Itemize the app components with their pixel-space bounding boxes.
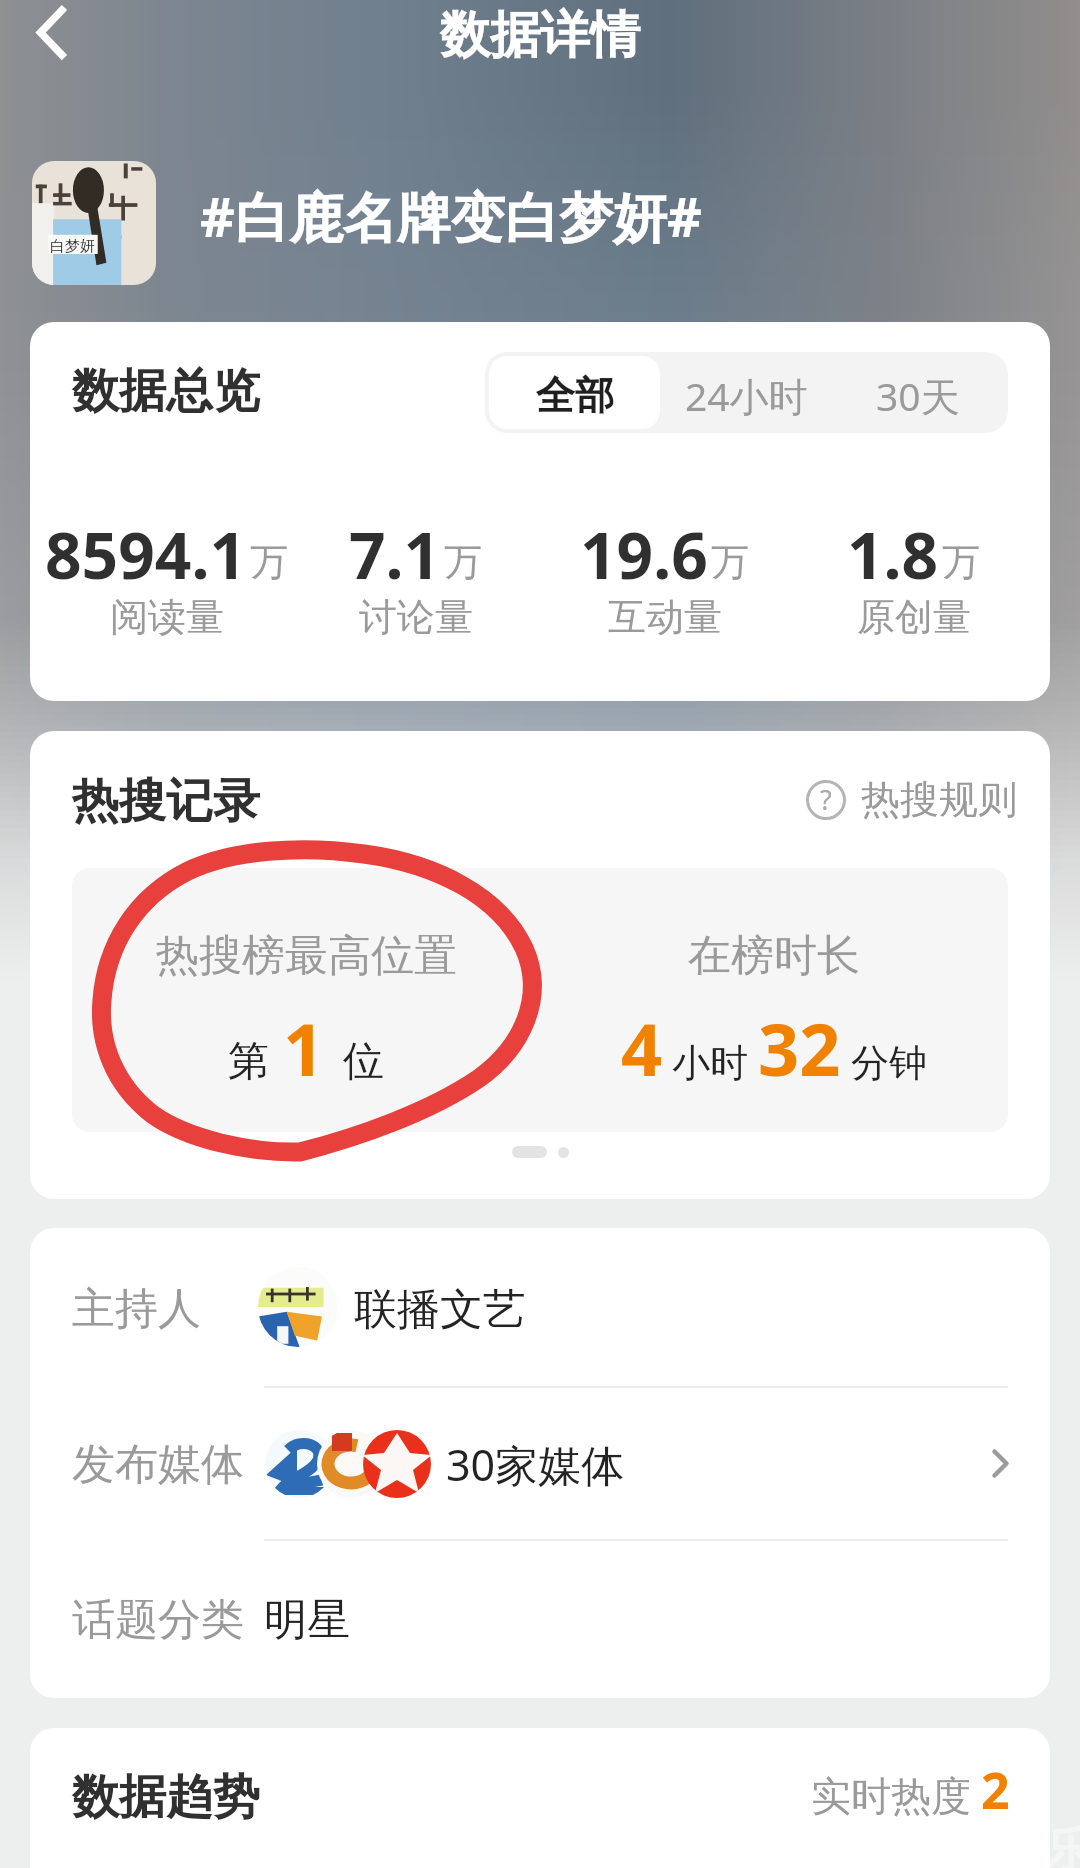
staticText: 万 [942,538,980,586]
staticText: 万 [250,538,288,586]
staticText: 阅读量 [110,593,224,641]
staticText: 分钟 [851,1039,927,1087]
staticText: #白鹿名牌变白梦妍# [200,179,702,253]
staticText: ? [820,781,832,818]
staticText: 数据趋势 [72,1768,260,1827]
staticText: 30家媒体 [446,1435,625,1494]
staticText: 主持人 [72,1282,258,1336]
staticText: 7.1 [349,511,441,598]
staticText: 1 [283,999,325,1097]
staticText: 19.6 [580,511,708,598]
staticText: 热搜记录 [72,772,260,831]
staticText: 话题分类 [72,1593,264,1647]
staticText: 数据总览 [72,362,260,421]
staticText: 全部 [536,371,614,420]
staticText: 明星 [264,1593,350,1647]
staticText: 数据详情 [440,4,640,67]
staticText: 发布媒体 [72,1438,264,1492]
button[interactable]: 发布媒体 [72,1388,1008,1539]
staticText: 第 [228,1036,269,1088]
staticText: 万 [711,538,749,586]
staticText: 万 [444,538,482,586]
staticText: 实时热度 [811,1771,971,1821]
button[interactable]: 白梦妍 [32,161,156,285]
staticText: 热搜榜最高位置 [156,929,457,983]
staticText: 4 [621,999,663,1097]
staticText: 白梦妍 [50,237,95,256]
staticText: 24小时 [685,369,808,422]
staticText: 热搜规则 [861,775,1017,824]
button[interactable]: ? [806,775,1017,824]
button[interactable]: 主持人 [72,1228,1050,1386]
staticText: 30天 [876,369,960,422]
staticText: 2 [981,1756,1010,1824]
staticText: 小时 [672,1039,748,1087]
staticText: 联播文艺 [354,1283,526,1337]
button[interactable]: 24小时 [660,356,832,429]
staticText: 1.8 [847,511,939,598]
staticText: 乐 [1044,1820,1080,1868]
button[interactable]: 全部 [489,356,660,429]
staticText: 互动量 [608,593,722,641]
staticText: 在榜时长 [688,929,860,983]
staticText: 32 [758,999,841,1097]
staticText: 8594.1 [45,511,247,598]
staticText: 位 [343,1036,384,1088]
staticText: 讨论量 [359,593,473,641]
button[interactable]: 30天 [832,356,1004,429]
staticText: 原创量 [857,593,971,641]
button[interactable]: Back [0,0,96,72]
